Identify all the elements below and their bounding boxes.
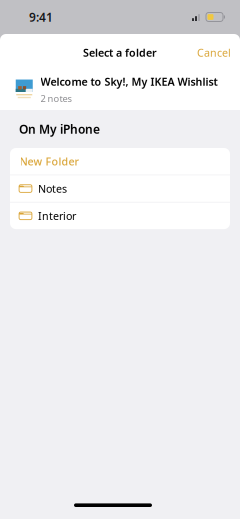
staticText: Welcome to Sky!, My IKEA Wishlist <box>40 74 217 89</box>
staticText: New Folder <box>19 154 79 168</box>
button[interactable]: Cancel <box>188 38 240 67</box>
button[interactable]: Interior <box>10 203 230 229</box>
staticText: 2 notes <box>40 92 71 104</box>
staticText: Cancel <box>197 45 231 60</box>
button[interactable]: New Folder <box>10 148 230 174</box>
staticText: Interior <box>38 209 76 223</box>
staticText: On My iPhone <box>19 121 100 137</box>
staticText: 9:41 <box>29 9 53 25</box>
button[interactable]: Notes <box>10 175 230 202</box>
button[interactable]: Welcome to Sky!, My IKEA Wishlist <box>0 70 240 109</box>
staticText: Notes <box>38 181 67 196</box>
staticText: Select a folder <box>83 45 157 60</box>
